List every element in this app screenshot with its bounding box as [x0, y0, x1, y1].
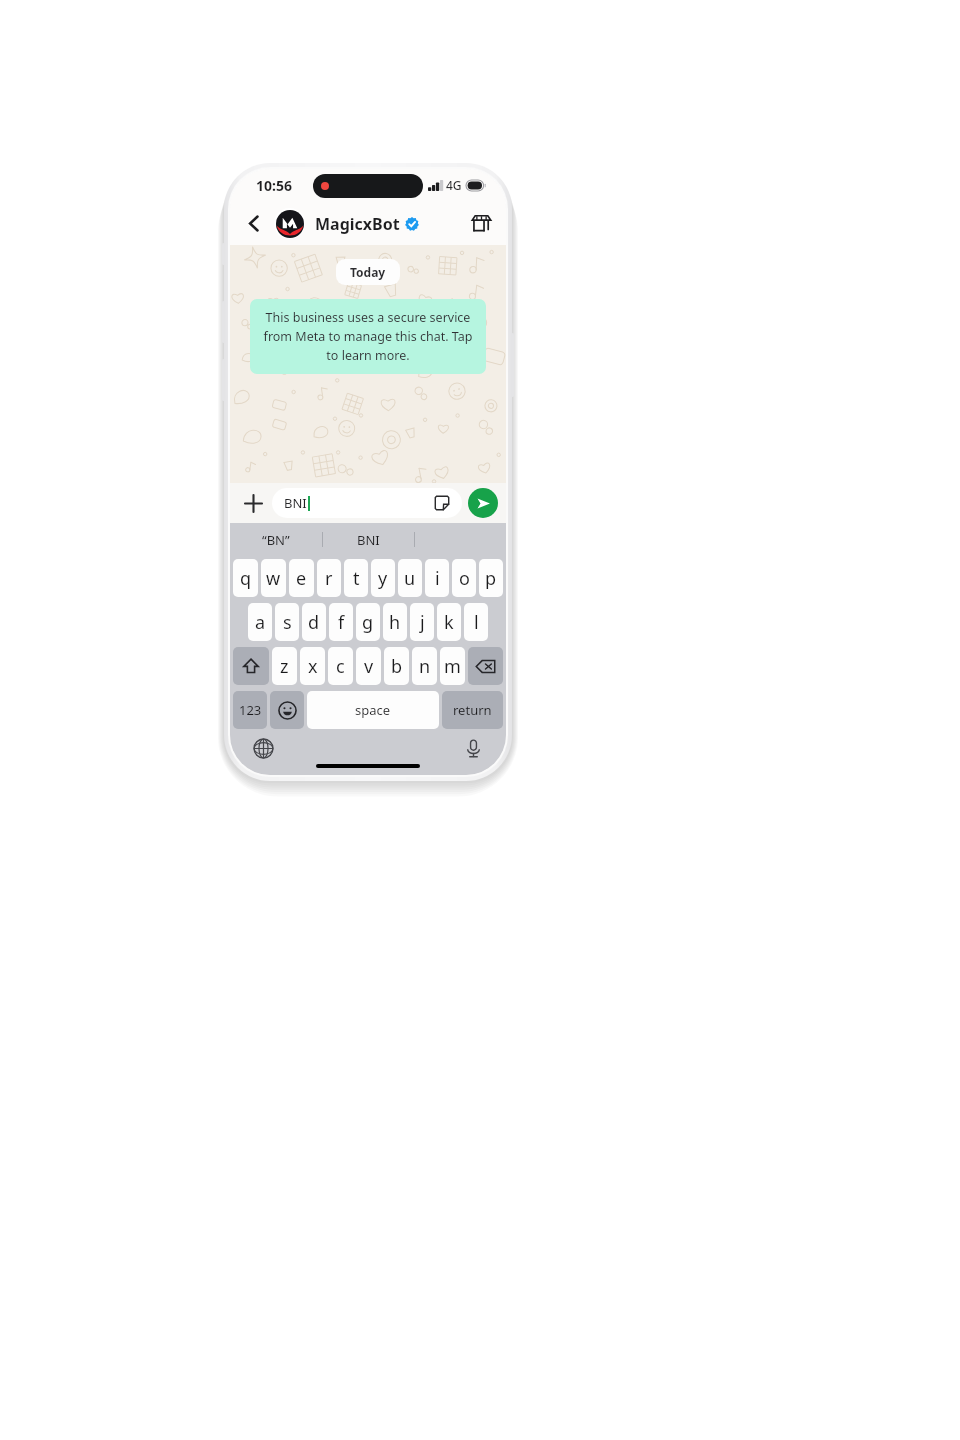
staticText: s: [283, 610, 292, 635]
staticText: BNI: [357, 531, 380, 549]
button[interactable]: i: [425, 559, 449, 597]
staticText: u: [404, 566, 416, 591]
button[interactable]: Change keyboard language: [248, 733, 278, 763]
button[interactable]: Dictate: [458, 733, 488, 763]
staticText: q: [240, 566, 252, 591]
staticText: 123: [239, 701, 262, 719]
staticText: c: [336, 654, 345, 679]
button[interactable]: w: [261, 559, 286, 597]
staticText: o: [459, 566, 470, 591]
button[interactable]: j: [410, 603, 434, 641]
button[interactable]: Business catalog: [462, 204, 500, 242]
button[interactable]: c: [328, 647, 353, 685]
button[interactable]: Emoji: [270, 691, 304, 729]
staticText: 4G: [446, 177, 462, 193]
button[interactable]: z: [272, 647, 297, 685]
staticText: p: [485, 566, 497, 591]
button[interactable]: t: [344, 559, 368, 597]
staticText: l: [474, 610, 479, 635]
staticText: return: [453, 701, 492, 719]
staticText: d: [308, 610, 320, 635]
button[interactable]: This business uses a secure service from…: [250, 299, 486, 374]
staticText: b: [391, 654, 403, 679]
button[interactable]: q: [233, 559, 258, 597]
button[interactable]: Back: [236, 205, 272, 241]
staticText: z: [280, 654, 289, 679]
staticText: k: [444, 610, 454, 635]
staticText: n: [419, 654, 431, 679]
staticText: space: [355, 701, 391, 719]
button[interactable]: b: [384, 647, 409, 685]
button[interactable]: x: [300, 647, 325, 685]
button[interactable]: 123: [233, 691, 267, 729]
button[interactable]: o: [452, 559, 476, 597]
button[interactable]: BNI: [272, 488, 462, 518]
button[interactable]: g: [356, 603, 380, 641]
button[interactable]: Send: [468, 488, 498, 518]
button[interactable]: Shift: [233, 647, 269, 685]
button[interactable]: Attach: [238, 488, 268, 518]
staticText: 10:56: [256, 176, 292, 195]
staticText: t: [353, 566, 360, 591]
button[interactable]: BNI: [323, 523, 414, 556]
staticText: h: [389, 610, 401, 635]
button[interactable]: v: [356, 647, 381, 685]
staticText: x: [308, 654, 318, 679]
staticText: BNI: [284, 494, 307, 512]
button[interactable]: f: [329, 603, 353, 641]
staticText: i: [435, 566, 440, 591]
button[interactable]: k: [437, 603, 461, 641]
staticText: This business uses a secure service from…: [262, 309, 474, 364]
button[interactable]: space: [307, 691, 439, 729]
staticText: m: [444, 654, 461, 679]
button[interactable]: s: [275, 603, 299, 641]
button[interactable]: n: [412, 647, 437, 685]
button[interactable]: u: [398, 559, 422, 597]
button[interactable]: MagicxBot: [274, 208, 462, 239]
button[interactable]: d: [302, 603, 326, 641]
button[interactable]: l: [464, 603, 488, 641]
staticText: Today: [350, 264, 386, 280]
staticText: r: [325, 566, 333, 591]
staticText: MagicxBot: [315, 213, 400, 235]
staticText: a: [255, 610, 266, 635]
button[interactable]: y: [371, 559, 395, 597]
staticText: w: [266, 566, 281, 591]
button[interactable]: return: [442, 691, 503, 729]
button[interactable]: m: [440, 647, 465, 685]
staticText: “BN”: [262, 531, 290, 549]
staticText: y: [378, 566, 388, 591]
button[interactable]: h: [383, 603, 407, 641]
staticText: j: [420, 610, 425, 635]
button[interactable]: p: [479, 559, 503, 597]
button[interactable]: e: [289, 559, 314, 597]
staticText: e: [296, 566, 307, 591]
button[interactable]: Backspace: [468, 647, 503, 685]
button[interactable]: a: [248, 603, 272, 641]
staticText: f: [338, 610, 345, 635]
button[interactable]: “BN”: [230, 523, 322, 556]
staticText: g: [362, 610, 374, 635]
staticText: v: [364, 654, 374, 679]
button[interactable]: r: [317, 559, 341, 597]
